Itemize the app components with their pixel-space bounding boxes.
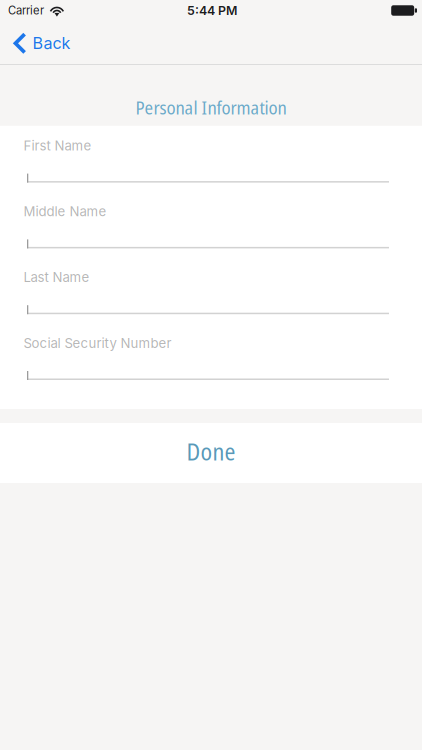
- staticText: 5:44 PM: [187, 3, 237, 18]
- staticText: Middle Name: [23, 203, 106, 219]
- staticText: Carrier: [8, 4, 44, 17]
- button[interactable]: Back: [0, 21, 82, 64]
- staticText: Last Name: [23, 269, 89, 285]
- button[interactable]: Social Security Number: [0, 338, 422, 380]
- button[interactable]: Done: [0, 423, 422, 483]
- button[interactable]: Middle Name: [0, 206, 422, 248]
- staticText: Done: [186, 435, 235, 467]
- staticText: First Name: [23, 138, 91, 154]
- button[interactable]: Last Name: [0, 272, 422, 314]
- staticText: Social Security Number: [23, 335, 171, 351]
- staticText: Back: [32, 33, 70, 53]
- staticText: Personal Information: [135, 95, 286, 120]
- button[interactable]: First Name: [0, 140, 422, 183]
